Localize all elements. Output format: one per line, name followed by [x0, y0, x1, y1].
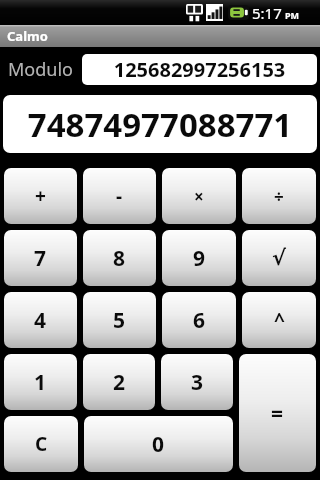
button[interactable]: + [4, 168, 77, 224]
button[interactable]: × [162, 168, 236, 224]
button[interactable]: 9 [162, 230, 236, 286]
other: 3G network [186, 4, 203, 22]
button[interactable]: ^ [242, 292, 316, 348]
button[interactable]: 1 [4, 354, 77, 410]
button[interactable]: 5 [83, 292, 156, 348]
staticText: + [35, 183, 46, 209]
button[interactable]: 6 [162, 292, 236, 348]
staticText: × [194, 185, 204, 208]
staticText: 2 [113, 368, 126, 397]
button[interactable]: 125682997256153 [82, 54, 317, 85]
staticText: 7 [34, 244, 47, 273]
staticText: - [116, 183, 123, 209]
staticText: Modulo [8, 57, 73, 82]
button[interactable]: 4 [4, 292, 77, 348]
button[interactable]: C [4, 416, 78, 472]
other: Signal strength [206, 4, 223, 21]
staticText: 4 [34, 306, 47, 335]
staticText: 1 [34, 368, 47, 397]
staticText: C [35, 431, 48, 457]
button[interactable]: 3 [161, 354, 233, 410]
button[interactable]: - [83, 168, 156, 224]
button[interactable]: 2 [83, 354, 155, 410]
other: Battery [228, 5, 249, 20]
staticText: = [271, 399, 284, 428]
staticText: 125682997256153 [84, 56, 315, 83]
button[interactable]: 74874977088771 [3, 95, 317, 153]
staticText: ^ [274, 307, 285, 333]
staticText: Calmo [7, 27, 48, 45]
button[interactable]: ÷ [242, 168, 316, 224]
button[interactable]: 8 [83, 230, 156, 286]
button[interactable]: 7 [4, 230, 77, 286]
staticText: 6 [193, 306, 206, 335]
staticText: 74874977088771 [7, 102, 313, 147]
staticText: 5 [113, 306, 126, 335]
staticText: 5:17 [252, 3, 282, 23]
staticText: ÷ [274, 185, 284, 208]
button[interactable]: √ [242, 230, 316, 286]
staticText: PM [285, 9, 300, 21]
button[interactable]: = [239, 354, 316, 472]
staticText: 0 [152, 430, 165, 459]
staticText: 9 [193, 244, 206, 273]
staticText: √ [272, 246, 287, 270]
button[interactable]: 0 [84, 416, 233, 472]
staticText: 3 [191, 368, 204, 397]
staticText: 8 [113, 244, 126, 273]
